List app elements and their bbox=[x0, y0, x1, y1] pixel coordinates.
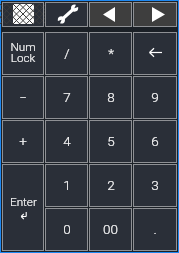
button[interactable]: Backspace bbox=[133, 32, 177, 75]
button[interactable]: Enter bbox=[2, 164, 44, 251]
staticText: 4 bbox=[63, 133, 71, 149]
staticText: * bbox=[108, 45, 114, 61]
button[interactable]: 2 bbox=[89, 164, 132, 207]
staticText: 7 bbox=[63, 89, 71, 105]
staticText: . bbox=[153, 221, 157, 237]
button[interactable]: multiply bbox=[89, 32, 132, 75]
button[interactable]: 3 bbox=[133, 164, 177, 207]
button[interactable]: 4 bbox=[45, 120, 88, 163]
button[interactable]: 1 bbox=[45, 164, 88, 207]
staticText: 0 bbox=[63, 221, 71, 237]
staticText: 6 bbox=[151, 133, 159, 149]
staticText: 2 bbox=[107, 177, 115, 193]
staticText: 9 bbox=[151, 89, 159, 105]
button[interactable]: Previous bbox=[89, 2, 132, 27]
button[interactable]: 5 bbox=[89, 120, 132, 163]
button[interactable]: 7 bbox=[45, 76, 88, 119]
staticText: 00 bbox=[103, 221, 118, 237]
staticText: − bbox=[19, 89, 27, 105]
button[interactable]: 8 bbox=[89, 76, 132, 119]
button[interactable]: 9 bbox=[133, 76, 177, 119]
staticText: Enter bbox=[10, 195, 37, 209]
button[interactable]: Settings bbox=[45, 2, 88, 27]
button[interactable]: Keyboard layout bbox=[2, 2, 44, 27]
button[interactable]: plus bbox=[2, 120, 44, 163]
staticText: + bbox=[19, 133, 27, 149]
button[interactable]: Num Lock bbox=[2, 32, 44, 75]
button[interactable]: Next bbox=[133, 2, 177, 27]
button[interactable]: 6 bbox=[133, 120, 177, 163]
button[interactable]: 0 bbox=[45, 208, 88, 251]
staticText: 8 bbox=[107, 89, 115, 105]
button[interactable]: 00 bbox=[89, 208, 132, 251]
staticText: 5 bbox=[107, 133, 115, 149]
staticText: / bbox=[64, 45, 70, 61]
staticText: 3 bbox=[151, 177, 159, 193]
button[interactable]: minus bbox=[2, 76, 44, 119]
button[interactable]: divide bbox=[45, 32, 88, 75]
staticText: Num Lock bbox=[10, 40, 36, 65]
button[interactable]: decimal point bbox=[133, 208, 177, 251]
staticText: 1 bbox=[63, 177, 71, 193]
